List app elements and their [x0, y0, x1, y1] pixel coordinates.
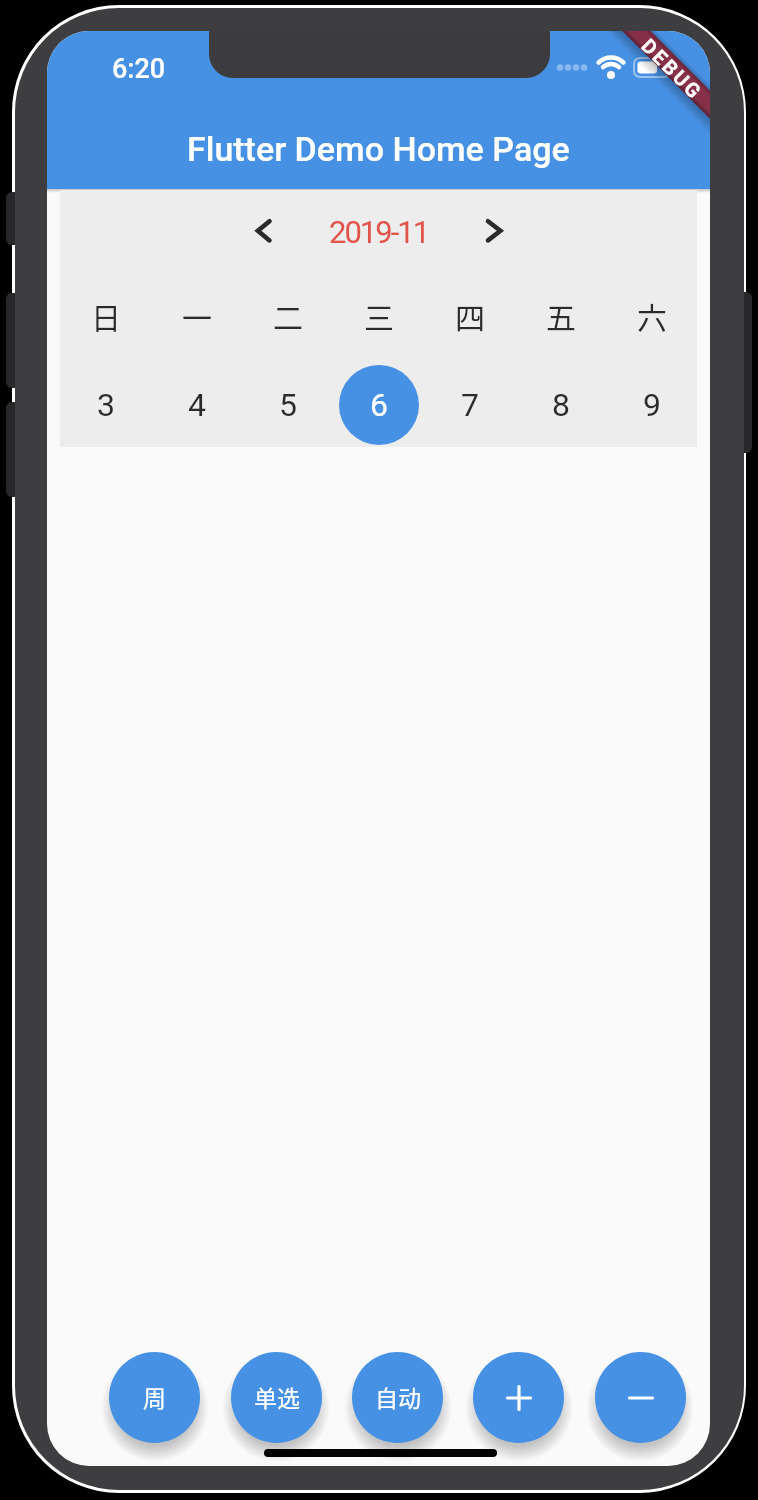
button[interactable]: 自动 [352, 1352, 443, 1443]
button[interactable] [595, 1352, 686, 1443]
staticText: 6 [370, 386, 388, 424]
staticText: 四 [455, 294, 485, 337]
staticText: 三 [364, 294, 394, 337]
staticText: 8 [552, 386, 570, 424]
button[interactable]: 周 [109, 1352, 200, 1443]
button[interactable]: 3 [60, 380, 151, 430]
staticText: 五 [546, 294, 576, 337]
button[interactable]: 4 [151, 380, 242, 430]
button[interactable]: 2019-11 [298, 210, 459, 254]
button[interactable]: 5 [242, 380, 333, 430]
staticText: 六 [637, 294, 667, 337]
staticText: 一 [182, 294, 212, 337]
button[interactable] [473, 1352, 564, 1443]
button[interactable]: 单选 [231, 1352, 322, 1443]
staticText: 周 [143, 1380, 166, 1413]
button[interactable] [339, 365, 419, 445]
staticText: 2019-11 [329, 214, 429, 250]
staticText: 日 [91, 294, 121, 337]
button[interactable]: 7 [424, 380, 515, 430]
staticText: 自动 [375, 1380, 421, 1413]
button[interactable]: 8 [515, 380, 606, 430]
button[interactable] [247, 211, 527, 255]
staticText: 3 [97, 386, 115, 424]
staticText: 5 [279, 386, 297, 424]
staticText: 单选 [254, 1380, 300, 1413]
staticText: 6:20 [112, 53, 166, 85]
button[interactable]: 9 [606, 380, 697, 430]
staticText: 4 [188, 386, 206, 424]
staticText: 9 [643, 386, 661, 424]
staticText: 二 [273, 294, 303, 337]
staticText: 7 [461, 386, 479, 424]
staticText: DEBUG [639, 34, 708, 102]
button[interactable]: 6 [333, 380, 424, 430]
staticText: Flutter Demo Home Page [187, 129, 570, 169]
